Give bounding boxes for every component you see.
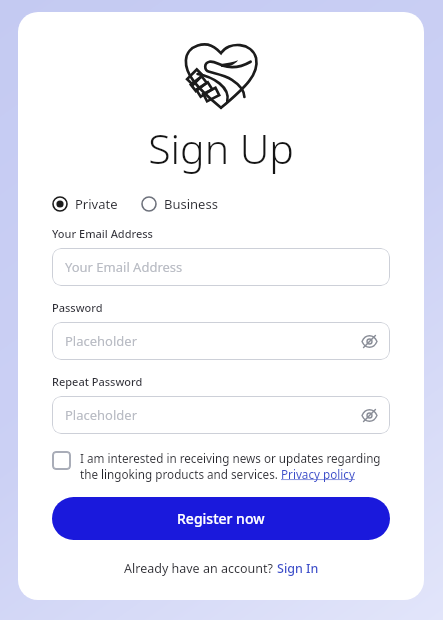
staticText: Private [75, 195, 118, 213]
button[interactable]: Private [52, 195, 118, 213]
staticText: I am interested in receiving news or upd… [80, 450, 381, 466]
button[interactable]: Business [141, 195, 218, 213]
staticText: Privacy policy [281, 466, 355, 482]
button[interactable]: Placeholder [52, 322, 390, 360]
button[interactable]: Show password [359, 405, 379, 425]
staticText: Sign In [277, 560, 319, 577]
button[interactable]: Register now [52, 497, 390, 540]
staticText: Placeholder [65, 332, 138, 350]
staticText: Placeholder [65, 406, 138, 424]
staticText: Sign Up [148, 120, 294, 176]
button[interactable]: Receive news checkbox [52, 451, 71, 470]
button[interactable]: Show password [359, 331, 379, 351]
staticText: Password [52, 300, 103, 315]
staticText: Your Email Address [52, 226, 153, 241]
staticText: Already have an account? [124, 560, 277, 577]
button[interactable]: Privacy policy [281, 466, 355, 482]
staticText: Your Email Address [65, 258, 183, 276]
staticText: Repeat Password [52, 374, 143, 389]
button[interactable]: Placeholder [52, 396, 390, 434]
button[interactable]: Your Email Address [52, 248, 390, 286]
staticText: the lingoking products and services. [80, 466, 281, 482]
staticText: Register now [177, 509, 265, 528]
staticText: Business [164, 195, 218, 213]
button[interactable]: Sign In [277, 560, 319, 577]
